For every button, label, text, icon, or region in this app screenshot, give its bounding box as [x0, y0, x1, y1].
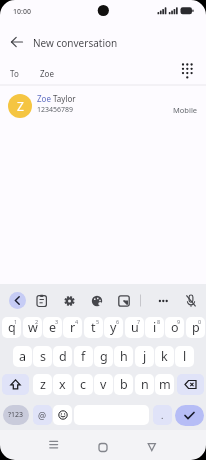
- staticText: m: [159, 376, 171, 393]
- staticText: Z: [17, 98, 24, 114]
- button[interactable]: f: [74, 346, 93, 367]
- staticText: x: [59, 376, 66, 393]
- button[interactable]: h: [114, 346, 133, 367]
- staticText: s: [40, 348, 46, 365]
- button[interactable]: t: [84, 317, 103, 338]
- button[interactable]: y: [104, 317, 123, 338]
- button[interactable]: o: [165, 317, 184, 338]
- staticText: n: [141, 376, 149, 393]
- button[interactable]: [91, 435, 115, 459]
- staticText: q: [8, 319, 16, 336]
- button[interactable]: c: [74, 374, 93, 395]
- staticText: f: [81, 348, 86, 365]
- button[interactable]: l: [175, 346, 194, 367]
- staticText: ?123: [8, 410, 24, 420]
- staticText: 4: [75, 318, 79, 325]
- staticText: 9: [177, 318, 181, 325]
- staticText: a: [19, 348, 27, 365]
- button[interactable]: [53, 405, 72, 425]
- button[interactable]: g: [94, 346, 113, 367]
- staticText: c: [80, 376, 87, 393]
- button[interactable]: [6, 31, 28, 53]
- button[interactable]: [181, 290, 201, 310]
- staticText: 7: [137, 318, 141, 325]
- button[interactable]: [140, 435, 164, 459]
- staticText: z: [40, 376, 46, 393]
- staticText: 8: [157, 318, 161, 325]
- staticText: 0: [198, 318, 202, 325]
- button[interactable]: a: [13, 346, 32, 367]
- button[interactable]: v: [94, 374, 113, 395]
- staticText: 1: [14, 318, 18, 325]
- staticText: 2: [35, 318, 39, 325]
- button[interactable]: .: [153, 405, 172, 425]
- button[interactable]: i: [145, 317, 164, 338]
- button[interactable]: [0, 86, 206, 126]
- button[interactable]: w: [23, 317, 42, 338]
- button[interactable]: [42, 435, 66, 459]
- button[interactable]: [0, 58, 206, 85]
- staticText: 10:00: [13, 7, 31, 17]
- button[interactable]: [60, 290, 80, 310]
- staticText: d: [59, 348, 67, 365]
- staticText: 6: [116, 318, 120, 325]
- staticText: h: [120, 348, 128, 365]
- button[interactable]: x: [53, 374, 72, 395]
- button[interactable]: [87, 290, 107, 310]
- staticText: o: [171, 319, 179, 336]
- button[interactable]: p: [186, 317, 205, 338]
- button[interactable]: [175, 405, 204, 426]
- button[interactable]: [9, 292, 26, 309]
- staticText: .: [161, 409, 164, 421]
- staticText: v: [100, 376, 107, 393]
- button[interactable]: n: [135, 374, 154, 395]
- button[interactable]: [114, 290, 134, 310]
- button[interactable]: k: [155, 346, 174, 367]
- button[interactable]: [153, 290, 173, 310]
- staticText: g: [100, 348, 108, 365]
- staticText: 3: [55, 318, 59, 325]
- staticText: t: [91, 319, 96, 336]
- staticText: r: [70, 319, 76, 336]
- button[interactable]: [2, 374, 29, 395]
- staticText: k: [161, 348, 168, 365]
- staticText: To: [10, 68, 19, 79]
- button[interactable]: z: [33, 374, 52, 395]
- staticText: Mobile: [173, 105, 198, 115]
- button[interactable]: m: [155, 374, 174, 395]
- button[interactable]: r: [63, 317, 82, 338]
- button[interactable]: u: [125, 317, 144, 338]
- staticText: j: [143, 348, 147, 365]
- button[interactable]: [177, 374, 204, 395]
- button[interactable]: s: [33, 346, 52, 367]
- button[interactable]: b: [114, 374, 133, 395]
- button[interactable]: j: [135, 346, 154, 367]
- staticText: y: [110, 319, 117, 336]
- staticText: 5: [96, 318, 100, 325]
- staticText: l: [183, 348, 187, 365]
- staticText: e: [49, 319, 57, 336]
- staticText: Zoe Taylor: [37, 93, 76, 104]
- staticText: 123456789: [37, 105, 74, 115]
- staticText: p: [192, 319, 200, 336]
- staticText: b: [120, 376, 128, 393]
- staticText: Zoe: [40, 68, 54, 79]
- button[interactable]: [32, 290, 52, 310]
- staticText: @: [38, 409, 47, 421]
- staticText: New conversation: [33, 36, 118, 50]
- button[interactable]: e: [43, 317, 62, 338]
- button[interactable]: d: [53, 346, 72, 367]
- button[interactable]: ?123: [3, 405, 29, 425]
- staticText: i: [153, 319, 157, 336]
- button[interactable]: @: [33, 405, 52, 425]
- button[interactable]: q: [2, 317, 21, 338]
- staticText: u: [131, 319, 139, 336]
- staticText: w: [28, 319, 38, 336]
